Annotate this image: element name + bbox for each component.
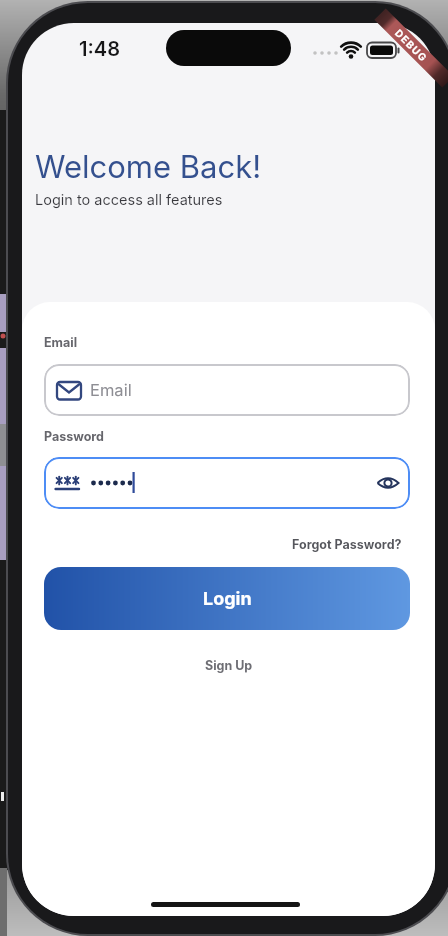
staticText: Login to access all features [35, 191, 223, 209]
button[interactable]: Forgot Password? [292, 537, 402, 552]
staticText: 1:48 [79, 37, 120, 61]
button[interactable]: Login [44, 567, 410, 630]
staticText: DEBUG [393, 27, 430, 64]
staticText: Welcome Back! [35, 148, 262, 186]
staticText: Login [203, 588, 252, 610]
staticText: Password [44, 429, 104, 444]
button[interactable] [44, 457, 410, 509]
staticText: Email [90, 380, 132, 400]
staticText: Email [44, 335, 78, 350]
button[interactable]: Email [44, 364, 410, 416]
button[interactable]: Sign Up [205, 658, 253, 673]
